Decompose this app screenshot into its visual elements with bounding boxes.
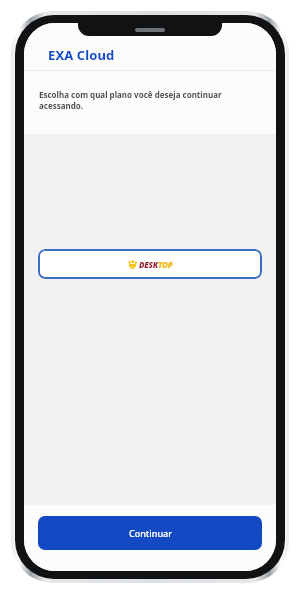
staticText: TOP [158,259,173,270]
button[interactable]: DESK [38,249,262,279]
button[interactable]: Continuar [38,516,262,550]
staticText: Escolha com qual plano você deseja conti… [39,89,262,112]
staticText: DESK [139,259,158,270]
staticText: EXA Cloud [48,46,115,64]
staticText: Continuar [129,527,172,539]
